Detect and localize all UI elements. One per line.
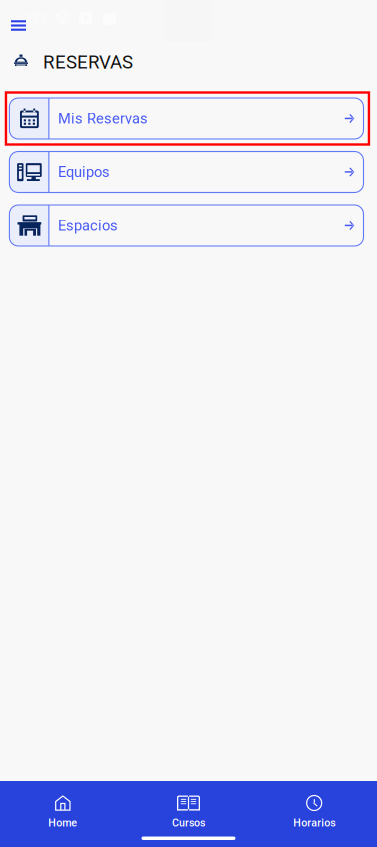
button[interactable]: Equipos — [9, 151, 363, 192]
button[interactable]: Cursos — [126, 781, 251, 847]
staticText: Espacios — [58, 217, 118, 234]
staticText: RESERVAS — [43, 51, 133, 73]
staticText: Mis Reservas — [58, 110, 148, 127]
button[interactable]: Horarios — [251, 781, 377, 847]
staticText: 8:32 — [22, 10, 46, 26]
staticText: Cursos — [172, 816, 205, 829]
staticText: Equipos — [58, 163, 110, 181]
staticText: Horarios — [293, 816, 335, 829]
staticText: Home — [48, 816, 77, 829]
button[interactable]: Espacios — [9, 205, 363, 246]
button[interactable]: Mis Reservas — [9, 98, 363, 139]
button[interactable]: Home — [0, 781, 126, 847]
